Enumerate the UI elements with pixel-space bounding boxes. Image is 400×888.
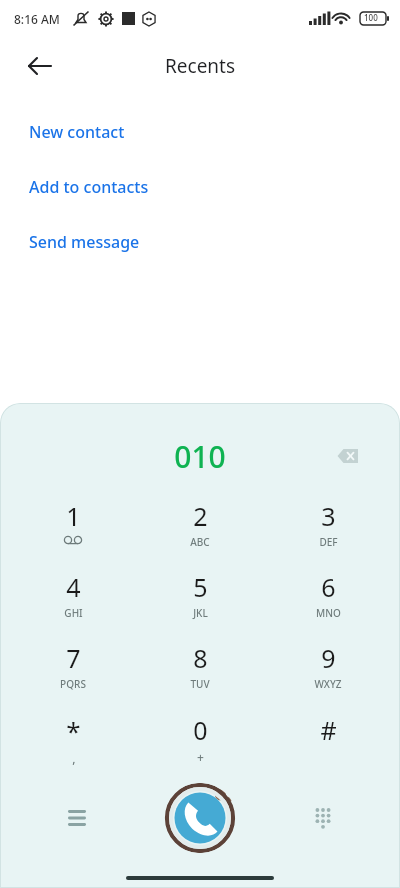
button[interactable]: 8 xyxy=(145,641,255,707)
button[interactable]: Call log xyxy=(57,798,97,838)
staticText: 010 xyxy=(174,436,226,477)
button[interactable]: 3 xyxy=(273,499,383,565)
staticText: Send message xyxy=(29,231,140,253)
staticText: 100 xyxy=(364,12,378,23)
button[interactable]: Add to contacts xyxy=(0,159,400,214)
staticText: TUV xyxy=(190,677,210,691)
button[interactable]: 0 xyxy=(145,713,255,779)
staticText: 9 xyxy=(321,641,336,675)
staticText: New contact xyxy=(29,121,125,143)
staticText: * xyxy=(66,713,81,748)
staticText: ABC xyxy=(190,535,210,549)
staticText: 6 xyxy=(321,570,336,604)
staticText: 8 xyxy=(193,641,208,675)
staticText: + xyxy=(197,749,204,765)
staticText: Recents xyxy=(165,53,236,79)
staticText: DEF xyxy=(319,535,338,549)
button[interactable]: New contact xyxy=(0,104,400,159)
button[interactable]: 4 xyxy=(18,570,128,636)
button[interactable]: Dialpad xyxy=(303,798,343,838)
button[interactable]: 9 xyxy=(273,641,383,707)
staticText: 4 xyxy=(66,570,81,604)
staticText: 7 xyxy=(66,641,81,675)
staticText: WXYZ xyxy=(314,677,342,691)
staticText: 1 xyxy=(66,499,81,533)
staticText: 8:16 AM xyxy=(14,11,60,27)
staticText: , xyxy=(72,750,76,766)
staticText: JKL xyxy=(193,606,208,620)
staticText: 5 xyxy=(193,570,208,604)
button[interactable]: # xyxy=(273,713,383,779)
button[interactable]: Call xyxy=(164,783,236,853)
staticText: 2 xyxy=(193,499,208,533)
button[interactable]: 5 xyxy=(145,570,255,636)
staticText: GHI xyxy=(64,606,83,620)
button[interactable]: Send message xyxy=(0,214,400,269)
staticText: MNO xyxy=(316,606,341,620)
staticText: # xyxy=(320,713,337,747)
button[interactable]: 6 xyxy=(273,570,383,636)
button[interactable]: * xyxy=(18,713,128,779)
button[interactable]: Backspace xyxy=(328,436,368,476)
button[interactable]: 7 xyxy=(18,641,128,707)
staticText: 0 xyxy=(193,713,208,747)
staticText: PQRS xyxy=(60,677,86,691)
button[interactable]: Back xyxy=(16,42,64,90)
staticText: Add to contacts xyxy=(29,176,149,198)
button[interactable]: 1 xyxy=(18,499,128,565)
staticText: 3 xyxy=(321,499,336,533)
button[interactable]: 2 xyxy=(145,499,255,565)
